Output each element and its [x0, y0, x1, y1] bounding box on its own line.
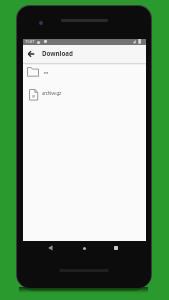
staticText: Download: [42, 49, 73, 57]
button[interactable]: [80, 244, 90, 254]
button[interactable]: [45, 242, 56, 253]
staticText: 11:07: [25, 39, 35, 44]
button[interactable]: gz: [23, 85, 146, 107]
button[interactable]: [111, 243, 121, 253]
staticText: archive.gz: [42, 90, 61, 96]
button[interactable]: [23, 63, 146, 85]
staticText: gz: [32, 94, 36, 98]
button[interactable]: [26, 49, 37, 60]
